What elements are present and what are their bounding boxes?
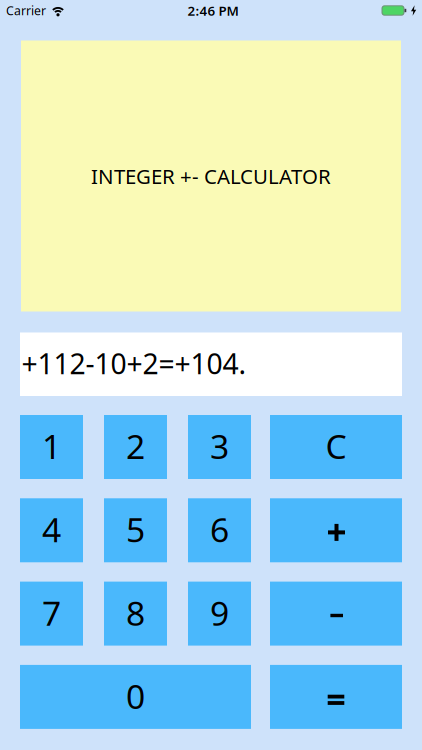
staticText: 0 [126, 673, 145, 719]
staticText: 9 [210, 590, 229, 635]
staticText: INTEGER +- CALCULATOR [91, 162, 331, 190]
staticText: 7 [42, 590, 61, 635]
staticText: +112-10+2=+104. [21, 344, 246, 382]
staticText: 1 [42, 423, 61, 469]
staticText: C [325, 423, 346, 469]
staticText: 6 [210, 506, 229, 552]
staticText: 8 [126, 590, 145, 635]
staticText: Carrier [6, 2, 46, 19]
staticText: 2:46 PM [187, 1, 238, 20]
staticText: 2 [126, 423, 145, 469]
staticText: 5 [126, 506, 145, 552]
staticText: 4 [42, 506, 61, 552]
staticText: 3 [210, 423, 229, 469]
